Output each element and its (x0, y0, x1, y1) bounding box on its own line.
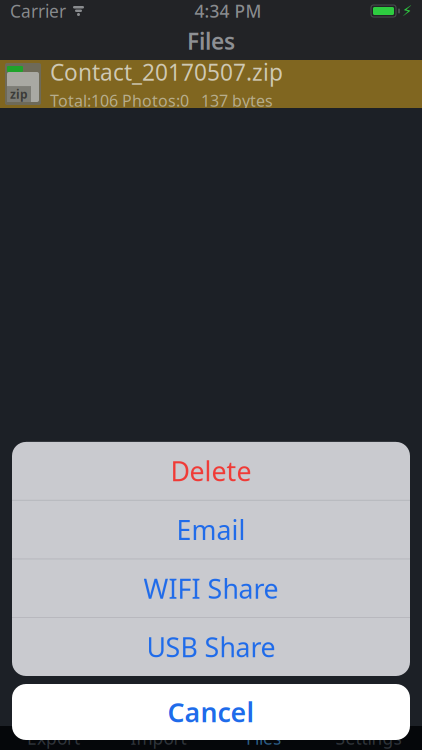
staticText: Cancel (167, 694, 254, 730)
button[interactable]: Settings (316, 726, 421, 750)
button[interactable]: Export (1, 726, 106, 750)
button[interactable]: USB Share (12, 618, 410, 676)
staticText: Import (130, 726, 186, 749)
staticText: Settings (335, 726, 401, 749)
button[interactable]: WIFI Share (12, 559, 410, 617)
staticText: Email (176, 512, 245, 547)
button[interactable]: Cancel (12, 684, 410, 740)
staticText: zip (10, 86, 28, 102)
staticText: Carrier (10, 0, 66, 22)
staticText: Delete (170, 453, 251, 489)
button[interactable]: zip (0, 60, 422, 108)
button[interactable]: Import (106, 726, 211, 750)
staticText: Export (27, 726, 80, 749)
button[interactable]: Email (12, 501, 410, 559)
button[interactable]: Files (211, 726, 316, 750)
staticText: Contact_20170507.zip (50, 57, 283, 87)
staticText: WIFI Share (143, 571, 278, 606)
button[interactable]: Delete (12, 442, 410, 500)
staticText: 4:34 PM (194, 0, 261, 22)
staticText: Total:106 Photos:0 137 bytes (50, 90, 273, 111)
staticText: USB Share (146, 629, 275, 665)
staticText: ⚡︎ (402, 3, 412, 19)
staticText: Files (187, 26, 235, 56)
staticText: Files (246, 726, 281, 749)
